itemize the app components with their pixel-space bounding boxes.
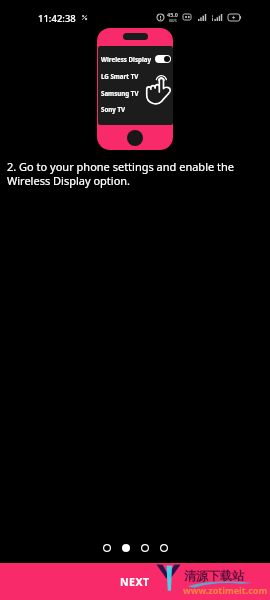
button[interactable]: Samsung TV [101,89,139,97]
button[interactable]: Page 2, current page [122,544,130,552]
staticText: www.zotimeit.com [183,584,268,596]
staticText: NEXT [120,575,150,589]
button[interactable]: Wireless Display switch, on [155,55,171,63]
staticText: KB/S [169,18,177,23]
button[interactable]: Wireless Display [101,55,152,63]
staticText: 清源下载站 [184,568,244,583]
staticText: 11:42:38 [38,12,76,25]
button[interactable]: Page [141,544,149,552]
button[interactable]: NEXT [0,563,270,600]
button[interactable]: LG Smart TV [101,72,139,80]
other: Tap [146,74,171,104]
button[interactable]: Page [103,544,111,552]
button[interactable]: Sony TV [101,105,126,113]
button[interactable]: Page [160,544,168,552]
staticText: 45.0 [167,11,178,18]
staticText: 2. Go to your phone settings and enable … [7,159,252,188]
